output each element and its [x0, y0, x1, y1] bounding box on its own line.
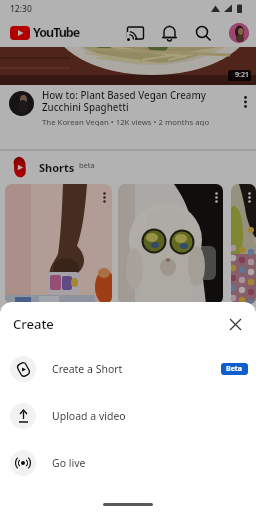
button[interactable] [161, 25, 178, 42]
button[interactable] [195, 25, 212, 42]
button[interactable]: Upload a video [0, 392, 256, 439]
button[interactable]: Go live [0, 439, 256, 486]
staticText: YouTube [33, 24, 80, 41]
button[interactable]: YouTube [10, 24, 80, 41]
staticText: Create a Short [52, 362, 123, 376]
button[interactable] [231, 184, 256, 304]
button[interactable] [5, 184, 112, 304]
button[interactable] [224, 313, 246, 335]
staticText: 9:21 [235, 70, 249, 80]
button[interactable]: How to: Plant Based Vegan Creamy Zucchin… [0, 85, 256, 126]
staticText: beta [79, 160, 95, 170]
button[interactable] [118, 184, 223, 304]
button[interactable]: 9:21 [0, 47, 256, 85]
button[interactable] [127, 25, 144, 42]
staticText: Go live [52, 456, 86, 470]
staticText: Upload a video [52, 409, 126, 423]
button[interactable] [229, 23, 249, 43]
staticText: Shorts [39, 160, 75, 175]
staticText: The Korean Vegan • 12K views • 2 months … [42, 117, 210, 126]
staticText: Create [13, 315, 54, 333]
staticText: How to: Plant Based Vegan Creamy Zucchin… [42, 89, 206, 114]
staticText: Beta [226, 364, 243, 374]
button[interactable]: Create a Short [0, 345, 256, 392]
staticText: 12:30 [10, 3, 32, 15]
